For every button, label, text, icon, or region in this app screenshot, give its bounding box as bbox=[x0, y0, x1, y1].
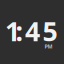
staticText: PM bbox=[44, 43, 52, 50]
staticText: : bbox=[15, 13, 22, 49]
staticText: 4 bbox=[25, 13, 40, 49]
staticText: 5 bbox=[42, 13, 57, 49]
staticText: 1 bbox=[5, 13, 20, 49]
